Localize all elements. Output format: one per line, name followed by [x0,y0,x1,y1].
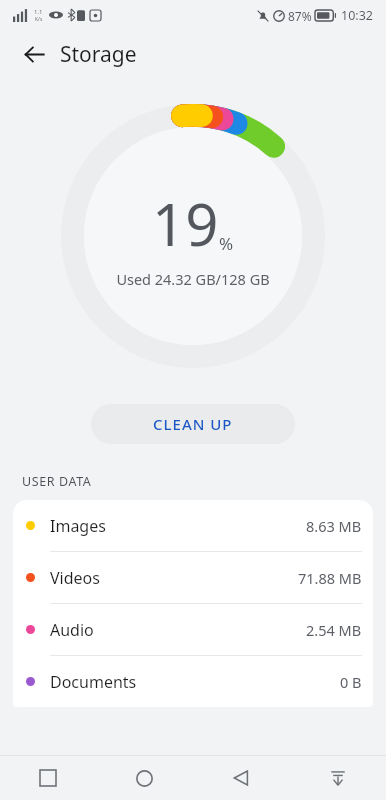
button[interactable]: Audio [13,604,373,655]
staticText: 1.1 [34,8,43,16]
button[interactable]: Hide navigation bar [289,756,386,800]
button[interactable]: Documents [13,656,373,707]
staticText: Images [50,515,106,537]
staticText: CLEAN UP [153,414,233,434]
staticText: 8.63 MB [306,516,362,536]
staticText: Audio [50,619,94,641]
staticText: 19 [152,184,219,263]
staticText: Documents [50,671,137,693]
staticText: 10:32 [341,7,373,24]
button[interactable]: Back [12,32,56,76]
staticText: Used 24.32 GB/128 GB [116,269,270,289]
staticText: 71.88 MB [298,568,362,588]
staticText: Storage [60,40,137,69]
staticText: USER DATA [22,473,92,490]
staticText: 0 B [340,672,362,692]
button[interactable]: Images [13,500,373,551]
button[interactable]: CLEAN UP [91,404,295,444]
button[interactable]: Back [192,756,289,800]
staticText: 2.54 MB [306,620,362,640]
button[interactable]: Home [96,756,192,800]
staticText: Videos [50,567,100,589]
button[interactable]: Videos [13,552,373,603]
staticText: 87% [288,8,312,24]
button[interactable]: Recent apps [0,756,96,800]
staticText: K/s [35,16,43,22]
staticText: % [219,232,234,255]
